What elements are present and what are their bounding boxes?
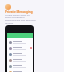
button[interactable] [7,57,33,63]
button[interactable] [7,45,33,51]
staticText: Private Messaging [5,10,33,14]
button[interactable]: App logo [5,4,11,10]
button[interactable] [7,39,33,45]
staticText: Lorem ipsum dolor sit amet consectetur a… [5,13,36,25]
button[interactable] [7,51,33,57]
button[interactable] [7,63,33,69]
button[interactable] [7,69,33,72]
